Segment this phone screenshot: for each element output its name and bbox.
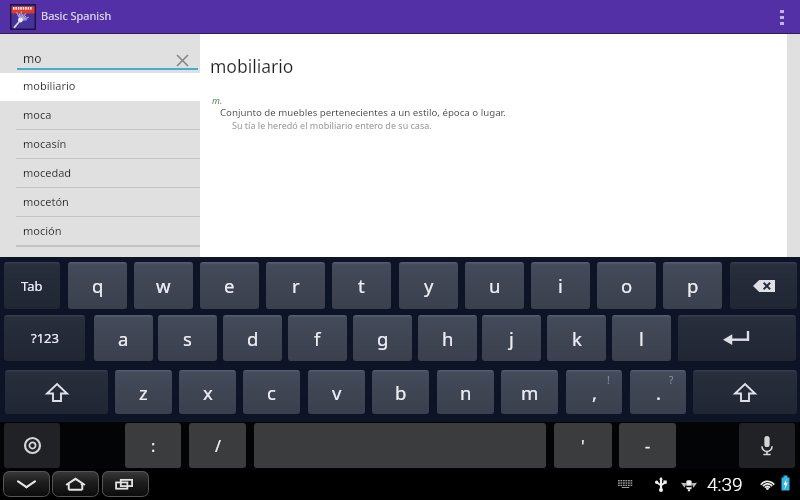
button[interactable]: w xyxy=(134,262,193,309)
button[interactable]: s xyxy=(158,315,217,361)
staticText: m xyxy=(521,380,539,405)
staticText: c xyxy=(267,380,276,405)
button[interactable]: k xyxy=(547,315,606,361)
button[interactable]: o xyxy=(597,262,656,309)
button[interactable]: , xyxy=(566,370,622,414)
button[interactable]: mobiliario xyxy=(0,73,200,101)
button[interactable]: / xyxy=(189,423,246,468)
button[interactable]: Hide keyboard xyxy=(3,471,50,497)
button[interactable]: e xyxy=(200,262,259,309)
staticText: / xyxy=(215,435,221,457)
staticText: m. xyxy=(212,94,223,106)
staticText: moca xyxy=(23,107,52,122)
staticText: : xyxy=(151,435,156,457)
other: Shift xyxy=(47,384,67,401)
button[interactable]: Voice input xyxy=(739,423,795,468)
button[interactable]: i xyxy=(531,262,590,309)
button[interactable]: z xyxy=(115,370,172,414)
staticText: f xyxy=(314,326,321,351)
staticText: ?123 xyxy=(31,329,59,347)
staticText: x xyxy=(203,380,213,405)
staticText: moción xyxy=(23,223,62,238)
staticText: mocedad xyxy=(23,165,72,180)
staticText: j xyxy=(509,326,514,351)
button[interactable]: c xyxy=(243,370,300,414)
button[interactable]: g xyxy=(353,315,412,361)
button[interactable]: j xyxy=(482,315,541,361)
button[interactable]: Home xyxy=(52,471,99,497)
staticText: - xyxy=(645,435,651,457)
staticText: . xyxy=(656,380,661,405)
button[interactable]: l xyxy=(612,315,671,361)
button[interactable]: r xyxy=(266,262,325,309)
staticText: Tab xyxy=(21,277,43,295)
staticText: w xyxy=(156,273,171,298)
button[interactable]: Shift xyxy=(693,370,797,414)
button[interactable]: : xyxy=(125,423,181,468)
staticText: mobiliario xyxy=(210,54,294,78)
staticText: g xyxy=(377,326,389,351)
staticText: mo xyxy=(23,50,42,66)
staticText: mobiliario xyxy=(23,78,76,93)
button[interactable]: mocetón xyxy=(0,188,200,217)
button[interactable]: . xyxy=(630,370,686,414)
button[interactable]: Keyboard settings xyxy=(4,423,60,468)
button[interactable]: Tab xyxy=(4,262,60,309)
staticText: , xyxy=(592,380,597,405)
button[interactable]: d xyxy=(223,315,282,361)
staticText: e xyxy=(224,273,235,298)
staticText: q xyxy=(92,273,104,298)
button[interactable]: y xyxy=(399,262,458,309)
button[interactable]: f xyxy=(288,315,347,361)
other: Shift xyxy=(735,384,755,401)
staticText: 4:39 xyxy=(707,473,743,495)
button[interactable]: - xyxy=(619,423,676,468)
staticText: ? xyxy=(669,373,674,387)
staticText: l xyxy=(639,326,644,351)
button[interactable]: n xyxy=(437,370,494,414)
staticText: Su tía le heredó el mobiliario entero de… xyxy=(232,119,432,131)
staticText: n xyxy=(460,380,472,405)
button[interactable]: mocedad xyxy=(0,159,200,188)
staticText: ! xyxy=(607,373,610,387)
staticText: a xyxy=(118,326,129,351)
button[interactable]: More options xyxy=(764,0,800,34)
button[interactable]: Backspace xyxy=(730,262,797,309)
staticText: mocetón xyxy=(23,194,69,209)
other: Backspace xyxy=(753,280,775,292)
button[interactable]: moca xyxy=(0,101,200,130)
button[interactable]: Recent apps xyxy=(102,471,149,497)
staticText: u xyxy=(489,273,501,298)
button[interactable]: q xyxy=(68,262,127,309)
button[interactable]: Enter xyxy=(678,315,796,361)
staticText: k xyxy=(572,326,582,351)
staticText: ' xyxy=(581,435,585,457)
button[interactable]: App icon xyxy=(10,4,36,30)
staticText: r xyxy=(292,273,300,298)
button[interactable]: ' xyxy=(554,423,612,468)
staticText: Basic Spanish xyxy=(41,8,112,23)
staticText: t xyxy=(358,273,365,298)
staticText: z xyxy=(139,380,148,405)
button[interactable]: h xyxy=(418,315,477,361)
button[interactable]: b xyxy=(372,370,429,414)
button[interactable]: x xyxy=(179,370,236,414)
button[interactable]: p xyxy=(663,262,722,309)
staticText: Conjunto de muebles pertenecientes a un … xyxy=(220,106,506,119)
button[interactable]: Shift xyxy=(5,370,108,414)
other: Enter xyxy=(723,331,751,345)
staticText: b xyxy=(395,380,407,405)
button[interactable]: mocasín xyxy=(0,130,200,159)
button[interactable]: u xyxy=(465,262,524,309)
staticText: v xyxy=(332,380,342,405)
button[interactable]: moción xyxy=(0,217,200,246)
button[interactable] xyxy=(0,48,200,70)
button[interactable]: a xyxy=(94,315,153,361)
button[interactable]: t xyxy=(332,262,391,309)
button[interactable]: m xyxy=(501,370,558,414)
button[interactable]: v xyxy=(308,370,365,414)
button[interactable]: Clear query xyxy=(170,48,195,72)
staticText: o xyxy=(621,273,633,298)
button[interactable]: ?123 xyxy=(4,315,85,361)
